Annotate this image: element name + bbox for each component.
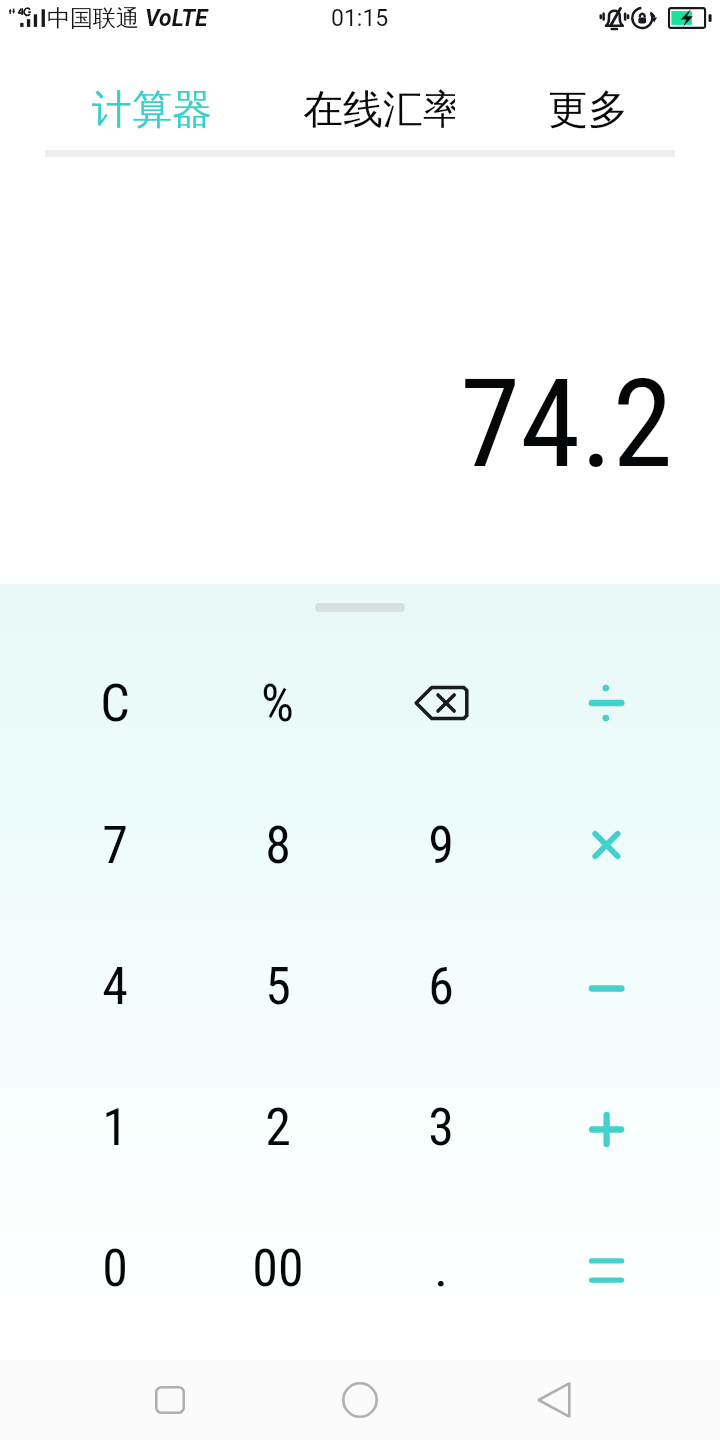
staticText: .: [434, 1238, 448, 1299]
staticText: 8: [265, 815, 291, 876]
staticText: 74.2: [460, 353, 673, 496]
button[interactable]: 6: [359, 916, 523, 1057]
button[interactable]: 2: [196, 1057, 359, 1198]
staticText: 6: [428, 956, 454, 1017]
button[interactable]: Minus: [523, 916, 687, 1057]
button[interactable]: 8: [196, 774, 359, 916]
staticText: 计算器: [92, 84, 212, 134]
staticText: 在线汇率: [303, 84, 455, 134]
button[interactable]: Equals: [523, 1198, 687, 1339]
button[interactable]: 0: [33, 1198, 196, 1339]
button[interactable]: Back: [494, 1360, 614, 1440]
button[interactable]: Divide: [523, 632, 687, 774]
staticText: 0: [102, 1238, 128, 1299]
staticText: 更多: [548, 84, 628, 134]
staticText: 4: [102, 956, 128, 1017]
staticText: 7: [102, 815, 128, 876]
button[interactable]: C: [33, 632, 196, 774]
button[interactable]: Plus: [523, 1057, 687, 1198]
staticText: 2: [265, 1097, 291, 1158]
staticText: C: [100, 673, 130, 734]
button[interactable]: 00: [196, 1198, 359, 1339]
staticText: 1: [102, 1097, 128, 1158]
staticText: 00: [252, 1238, 304, 1299]
button[interactable]: Delete: [359, 632, 523, 774]
button[interactable]: 3: [359, 1057, 523, 1198]
button[interactable]: 9: [359, 774, 523, 916]
button[interactable]: 4: [33, 916, 196, 1057]
button[interactable]: 更多: [455, 36, 720, 150]
button[interactable]: 7: [33, 774, 196, 916]
button[interactable]: 1: [33, 1057, 196, 1198]
staticText: %: [261, 673, 294, 734]
button[interactable]: %: [196, 632, 359, 774]
staticText: VoLTE: [145, 5, 208, 32]
button[interactable]: 在线汇率: [303, 36, 455, 150]
button[interactable]: Recent apps: [110, 1360, 230, 1440]
button[interactable]: Home: [300, 1360, 420, 1440]
button[interactable]: .: [359, 1198, 523, 1339]
button[interactable]: 计算器: [0, 36, 303, 150]
staticText: 5: [265, 956, 291, 1017]
button[interactable]: Multiply: [523, 774, 687, 916]
staticText: 3: [428, 1097, 454, 1158]
button[interactable]: 5: [196, 916, 359, 1057]
staticText: 中国联通: [47, 4, 139, 33]
staticText: 01:15: [331, 5, 389, 32]
staticText: 9: [428, 815, 454, 876]
